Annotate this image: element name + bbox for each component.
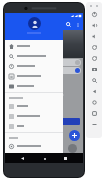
button[interactable] <box>5 61 63 71</box>
button[interactable]: Recientes <box>86 108 102 119</box>
button[interactable]: Más <box>86 119 102 130</box>
button[interactable]: Girar izquierda <box>86 42 102 53</box>
button[interactable] <box>5 41 63 51</box>
button[interactable]: Captura de pantalla <box>86 64 102 75</box>
button[interactable] <box>7 59 81 66</box>
button[interactable] <box>5 81 63 91</box>
button[interactable]: Apagar <box>86 9 102 20</box>
button[interactable]: Agregar <box>69 130 80 141</box>
button[interactable]: Volver <box>86 86 102 97</box>
button[interactable]: Zoom <box>86 75 102 86</box>
button[interactable]: Subir volumen <box>86 20 102 31</box>
button[interactable] <box>8 118 80 125</box>
button[interactable]: Recientes <box>61 154 70 163</box>
button[interactable] <box>5 71 63 81</box>
button[interactable] <box>5 101 63 111</box>
button[interactable]: Bajar volumen <box>86 31 102 42</box>
button[interactable]: Más opciones <box>73 20 82 29</box>
button[interactable] <box>5 121 63 131</box>
button[interactable] <box>5 141 63 151</box>
button[interactable]: Girar derecha <box>86 53 102 64</box>
button[interactable] <box>5 51 63 61</box>
button[interactable] <box>5 111 63 121</box>
button[interactable]: Inicio <box>40 154 49 163</box>
button[interactable]: Inicio <box>86 97 102 108</box>
button[interactable]: Atrás <box>18 154 27 163</box>
button[interactable]: Buscar <box>64 20 73 29</box>
button[interactable] <box>7 67 81 74</box>
